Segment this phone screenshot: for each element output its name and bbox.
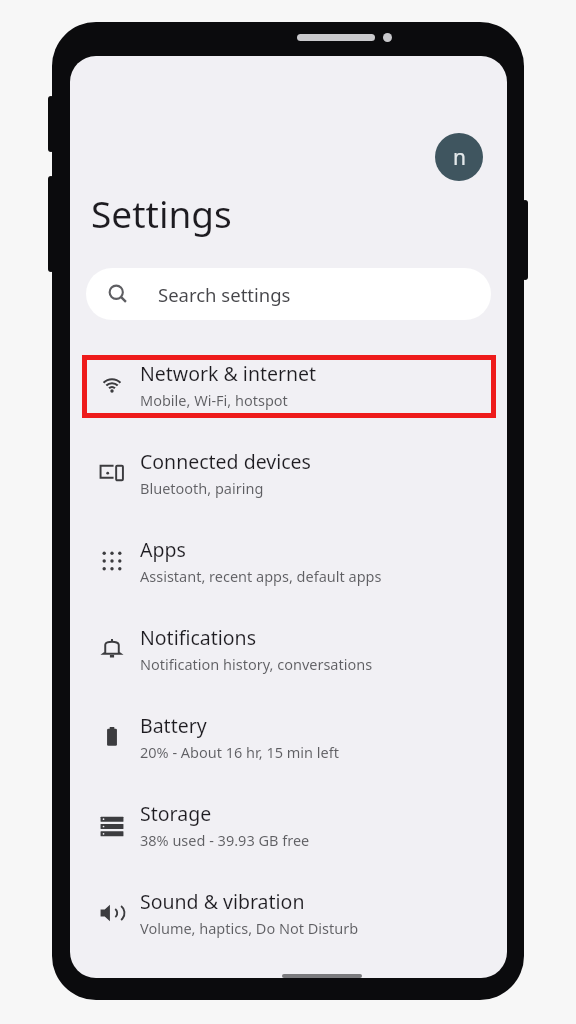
staticText: Mobile, Wi-Fi, hotspot — [140, 390, 288, 410]
staticText: Sound & vibration — [140, 888, 305, 915]
staticText: n — [453, 143, 466, 172]
button[interactable]: Apps — [84, 527, 494, 595]
button[interactable]: Network & internet — [84, 351, 494, 419]
staticText: Connected devices — [140, 448, 311, 475]
staticText: 20% - About 16 hr, 15 min left — [140, 742, 339, 762]
staticText: Search settings — [158, 282, 291, 307]
staticText: Storage — [140, 800, 212, 827]
staticText: Network & internet — [140, 360, 317, 387]
staticText: Assistant, recent apps, default apps — [140, 566, 382, 586]
button[interactable]: Battery — [84, 703, 494, 771]
staticText: Apps — [140, 536, 186, 563]
staticText: 38% used - 39.93 GB free — [140, 830, 310, 850]
button[interactable]: Connected devices — [84, 439, 494, 507]
staticText: Battery — [140, 712, 207, 739]
button[interactable]: Account — [435, 133, 483, 181]
button[interactable]: Sound & vibration — [84, 879, 494, 947]
staticText: Volume, haptics, Do Not Disturb — [140, 918, 359, 938]
staticText: Bluetooth, pairing — [140, 478, 264, 498]
staticText: Settings — [91, 188, 232, 238]
button[interactable]: Storage — [84, 791, 494, 859]
staticText: Notifications — [140, 624, 256, 651]
button[interactable]: Notifications — [84, 615, 494, 683]
button[interactable]: Search settings — [86, 268, 491, 320]
staticText: Notification history, conversations — [140, 654, 373, 674]
